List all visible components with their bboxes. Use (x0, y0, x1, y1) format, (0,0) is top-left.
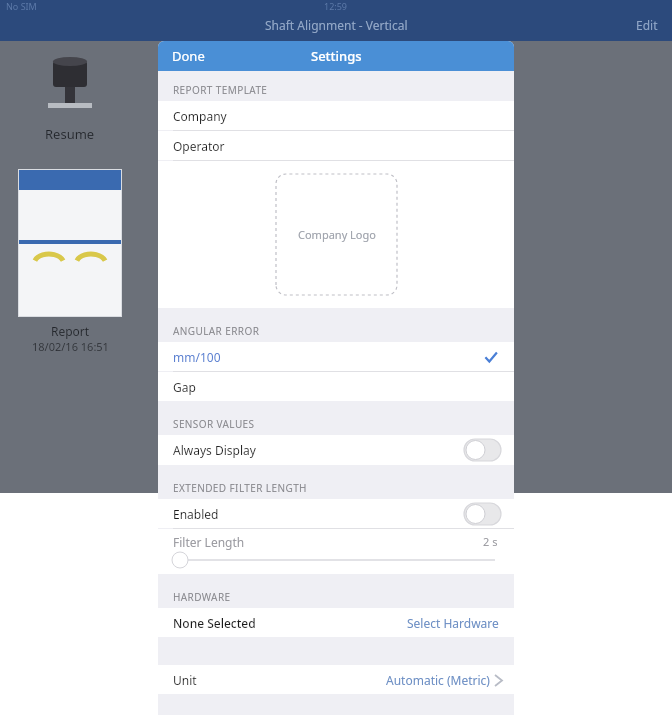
staticText: Filter Length (173, 534, 245, 550)
staticText: No SIM (6, 0, 37, 12)
staticText: HARDWARE (173, 590, 231, 604)
staticText: Shaft Alignment - Vertical (265, 17, 408, 33)
button[interactable]: Always Display (158, 435, 514, 465)
staticText: Enabled (173, 506, 219, 522)
staticText: mm/100 (173, 349, 221, 365)
staticText: ANGULAR ERROR (173, 324, 260, 338)
button[interactable]: Done (158, 42, 219, 70)
button[interactable]: Add company logo (276, 174, 397, 295)
button[interactable]: Unit (158, 665, 514, 694)
staticText: EXTENDED FILTER LENGTH (173, 481, 307, 495)
button[interactable]: Gap (158, 372, 514, 401)
staticText: 2 s (483, 534, 498, 549)
staticText: Edit (636, 17, 658, 33)
staticText: Operator (173, 138, 225, 154)
staticText: None Selected (173, 615, 256, 631)
staticText: Unit (173, 672, 197, 688)
staticText: Done (172, 47, 205, 65)
button[interactable]: mm/100 (158, 342, 514, 371)
button[interactable]: Resume (41, 121, 99, 147)
staticText: Company (173, 108, 227, 124)
button[interactable]: Enabled (158, 499, 514, 528)
staticText: REPORT TEMPLATE (173, 83, 268, 97)
button[interactable]: Company (158, 101, 514, 130)
button[interactable]: Edit (622, 11, 672, 39)
staticText: 18/02/16 16:51 (32, 339, 109, 354)
staticText: Always Display (173, 442, 256, 458)
button[interactable] (18, 169, 122, 317)
staticText: Resume (45, 125, 95, 143)
button[interactable]: Filter length slider (171, 552, 501, 568)
staticText: Select Hardware (407, 615, 499, 631)
staticText: Company Logo (298, 227, 376, 242)
button[interactable]: Operator (158, 131, 514, 160)
staticText: Report (51, 323, 90, 339)
staticText: SENSOR VALUES (173, 417, 255, 431)
staticText: Gap (173, 379, 196, 395)
staticText: Automatic (Metric) (386, 672, 490, 688)
button[interactable]: None Selected (158, 608, 514, 637)
staticText: Settings (311, 47, 362, 65)
staticText: 12:59 (324, 0, 348, 12)
